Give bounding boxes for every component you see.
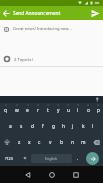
button[interactable]: w <box>11 103 22 118</box>
button[interactable] <box>40 166 64 183</box>
button[interactable]: s <box>16 118 27 134</box>
button[interactable]: v <box>45 134 56 150</box>
button[interactable]: p <box>93 103 103 118</box>
button[interactable]: z <box>14 134 24 150</box>
button[interactable]: m <box>78 134 89 150</box>
button[interactable] <box>84 150 101 166</box>
staticText: x <box>28 139 31 146</box>
button[interactable]: k <box>78 118 88 134</box>
staticText: y <box>57 107 60 114</box>
staticText: . <box>77 155 79 162</box>
button[interactable]: h <box>58 118 68 134</box>
staticText: t <box>47 107 49 114</box>
button[interactable] <box>64 166 88 183</box>
staticText: i <box>77 107 79 114</box>
button[interactable]: y <box>53 103 63 118</box>
staticText: p <box>97 107 100 114</box>
button[interactable]: . <box>72 150 84 166</box>
staticText: j <box>72 123 74 130</box>
staticText: k <box>82 123 85 130</box>
staticText: Great news! Introducing new... <box>13 26 72 32</box>
button[interactable]: g <box>48 118 58 134</box>
staticText: m <box>81 139 86 146</box>
button[interactable]: e <box>22 103 33 118</box>
staticText: f <box>42 123 44 130</box>
staticText: v <box>49 139 52 146</box>
staticText: n <box>71 139 74 146</box>
button[interactable]: c <box>34 134 45 150</box>
button[interactable] <box>18 150 31 166</box>
button[interactable]: i <box>73 103 83 118</box>
button[interactable] <box>89 134 103 150</box>
staticText: r <box>37 107 39 114</box>
staticText: b <box>60 139 63 146</box>
button[interactable] <box>0 6 13 20</box>
staticText: l <box>92 123 94 130</box>
button[interactable]: r <box>33 103 43 118</box>
staticText: c <box>38 139 41 146</box>
button[interactable]: n <box>67 134 78 150</box>
staticText: d <box>31 123 34 130</box>
staticText: English <box>45 156 58 161</box>
staticText: u <box>67 107 70 114</box>
staticText: s <box>20 123 23 130</box>
staticText: 2 Topic(s) <box>14 56 33 62</box>
button[interactable]: o <box>83 103 93 118</box>
button[interactable]: English <box>31 154 72 163</box>
button[interactable]: q <box>0 103 11 118</box>
staticText: w <box>15 107 19 114</box>
button[interactable]: b <box>56 134 67 150</box>
button[interactable]: ?123 <box>0 150 18 166</box>
button[interactable]: a <box>5 118 16 134</box>
staticText: Send Announcement <box>13 10 61 17</box>
staticText: a <box>9 123 12 130</box>
button[interactable]: f <box>38 118 48 134</box>
staticText: e <box>26 107 29 114</box>
button[interactable] <box>87 6 103 20</box>
staticText: h <box>62 123 65 130</box>
button[interactable]: Great news! Introducing new... <box>4 26 103 32</box>
button[interactable]: l <box>88 118 98 134</box>
staticText: z <box>18 139 21 146</box>
staticText: ?123 <box>5 156 13 161</box>
button[interactable]: j <box>68 118 78 134</box>
button[interactable]: d <box>27 118 38 134</box>
staticText: q <box>4 107 7 114</box>
button[interactable] <box>16 166 40 183</box>
button[interactable]: x <box>24 134 34 150</box>
button[interactable]: u <box>63 103 73 118</box>
button[interactable] <box>0 134 14 150</box>
staticText: g <box>52 123 55 130</box>
button[interactable]: 2 Topic(s) <box>4 56 103 62</box>
button[interactable]: t <box>43 103 53 118</box>
staticText: o <box>87 107 90 114</box>
